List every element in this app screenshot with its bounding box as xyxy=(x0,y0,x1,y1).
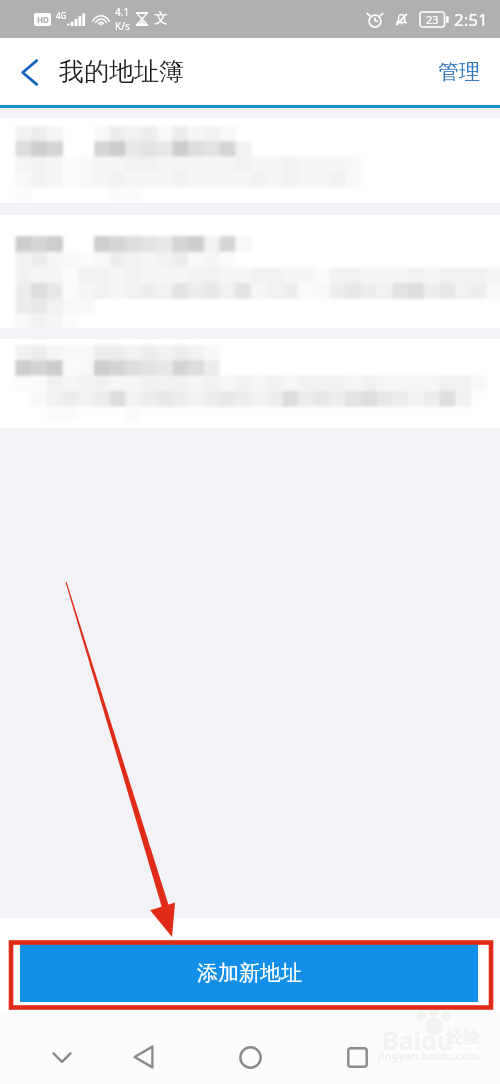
button[interactable]: Hide keyboard xyxy=(40,1035,84,1079)
button[interactable] xyxy=(0,339,500,428)
staticText: 2:51 xyxy=(454,8,488,31)
button[interactable] xyxy=(0,118,500,203)
staticText: 经验 xyxy=(446,1027,480,1048)
button[interactable]: Recents xyxy=(335,1035,379,1079)
button[interactable]: 添加新地址 xyxy=(20,943,478,1002)
staticText: 添加新地址 xyxy=(197,960,302,986)
staticText: 我的地址簿 xyxy=(59,56,184,87)
button[interactable]: Home xyxy=(228,1035,272,1079)
staticText: jingyan.baidu.com xyxy=(378,1048,480,1063)
staticText: HD xyxy=(37,14,49,25)
staticText: K/s xyxy=(115,19,130,33)
staticText: 管理 xyxy=(438,59,480,85)
staticText: 文 xyxy=(154,10,168,28)
staticText: Baidu xyxy=(382,1023,454,1057)
button[interactable] xyxy=(0,215,500,328)
button[interactable]: Back xyxy=(0,42,58,102)
staticText: 23 xyxy=(426,12,439,27)
button[interactable]: 管理 xyxy=(418,45,500,99)
staticText: 4G xyxy=(56,10,67,21)
staticText: 4.1 xyxy=(115,5,130,19)
button[interactable]: Back xyxy=(121,1035,165,1079)
